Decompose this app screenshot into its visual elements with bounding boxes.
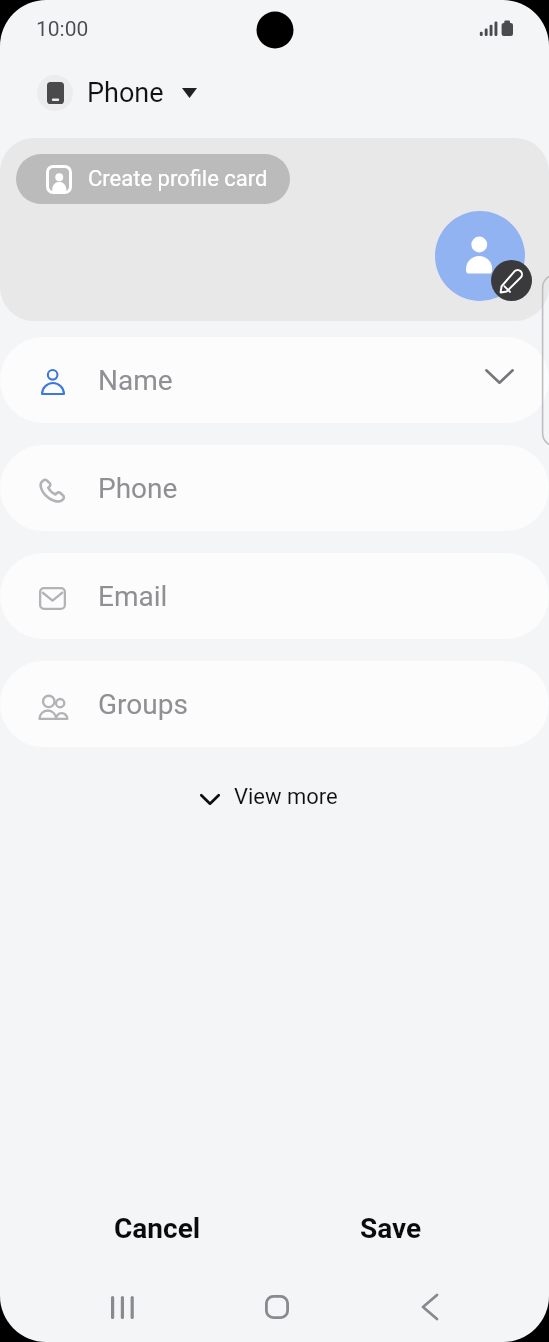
staticText: Cancel bbox=[114, 1212, 201, 1245]
button[interactable]: Email bbox=[0, 553, 549, 639]
button[interactable]: Phone bbox=[0, 445, 549, 531]
button[interactable]: Profile picture bbox=[435, 211, 525, 301]
staticText: Phone bbox=[98, 472, 178, 505]
staticText: 10:00 bbox=[36, 17, 89, 42]
button[interactable]: Recent apps bbox=[86, 1272, 160, 1342]
staticText: Name bbox=[98, 364, 173, 397]
button[interactable]: Edit profile picture bbox=[491, 260, 532, 301]
staticText: Create profile card bbox=[88, 166, 268, 192]
button[interactable]: Create profile card bbox=[16, 154, 290, 204]
button[interactable]: Home bbox=[240, 1272, 314, 1342]
button[interactable]: Name bbox=[0, 337, 549, 423]
button[interactable]: Back bbox=[393, 1272, 467, 1342]
staticText: Email bbox=[98, 580, 168, 613]
staticText: Phone bbox=[87, 77, 164, 109]
button[interactable]: Phone bbox=[29, 67, 217, 119]
button[interactable]: Save bbox=[294, 1192, 488, 1264]
staticText: Save bbox=[360, 1212, 422, 1245]
button[interactable]: Groups bbox=[0, 661, 549, 747]
staticText: Groups bbox=[98, 688, 188, 721]
button[interactable]: Cancel bbox=[60, 1192, 254, 1264]
staticText: View more bbox=[234, 784, 338, 810]
button[interactable]: View more bbox=[178, 774, 360, 820]
